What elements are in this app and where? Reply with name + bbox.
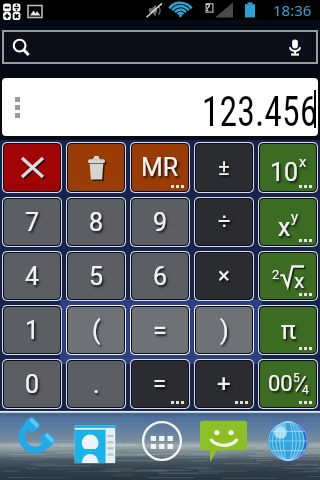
button[interactable]: 2: [260, 253, 316, 299]
staticText: (: [92, 316, 101, 345]
other: Voice search: [286, 38, 304, 56]
staticText: 2: [272, 267, 280, 282]
staticText: 4: [302, 383, 309, 397]
button[interactable]: ÷: [196, 199, 252, 245]
button[interactable]: =: [132, 307, 188, 353]
staticText: x: [278, 213, 291, 242]
button[interactable]: Browser: [265, 418, 311, 464]
button[interactable]: People: [73, 420, 117, 464]
button[interactable]: ×: [196, 253, 252, 299]
staticText: 7: [25, 208, 40, 237]
staticText: ): [220, 316, 229, 345]
button[interactable]: 10: [260, 144, 316, 191]
staticText: 4: [25, 262, 40, 291]
button[interactable]: π: [260, 307, 316, 353]
button[interactable]: Clear: [4, 144, 60, 191]
button[interactable]: 1: [4, 307, 60, 353]
staticText: 0: [25, 370, 40, 399]
button[interactable]: Search: [4, 32, 316, 62]
staticText: 1: [25, 316, 40, 345]
button[interactable]: Messaging: [200, 418, 247, 465]
staticText: 123.456: [202, 87, 318, 136]
button[interactable]: 0: [4, 361, 60, 407]
other: Search: [12, 38, 31, 57]
button[interactable]: 123.456: [2, 78, 318, 136]
staticText: 5: [293, 371, 300, 385]
staticText: 6: [153, 262, 168, 291]
staticText: +: [217, 370, 231, 398]
button[interactable]: 9: [132, 199, 188, 245]
staticText: π: [281, 316, 296, 345]
button[interactable]: Delete: [68, 144, 124, 191]
staticText: ?: [206, 1, 210, 13]
button[interactable]: x: [260, 199, 316, 245]
staticText: x: [299, 153, 307, 171]
other: Delete: [88, 156, 105, 180]
staticText: .: [93, 370, 100, 399]
button[interactable]: Phone: [10, 418, 54, 462]
staticText: 10: [270, 158, 299, 187]
staticText: x: [294, 269, 305, 294]
staticText: 00: [268, 371, 293, 397]
staticText: y: [291, 208, 299, 226]
button[interactable]: ±: [196, 144, 252, 191]
button[interactable]: 4: [4, 253, 60, 299]
button[interactable]: .: [68, 361, 124, 407]
staticText: MR: [141, 153, 179, 182]
button[interactable]: 00: [260, 361, 316, 407]
button[interactable]: =: [132, 361, 188, 407]
button[interactable]: 8: [68, 199, 124, 245]
button[interactable]: +: [196, 361, 252, 407]
button[interactable]: MR: [132, 144, 188, 191]
staticText: =: [153, 370, 167, 398]
staticText: ÷: [218, 209, 231, 235]
button[interactable]: 7: [4, 199, 60, 245]
staticText: 5: [89, 262, 104, 291]
staticText: ±: [218, 155, 230, 181]
button[interactable]: 6: [132, 253, 188, 299]
button[interactable]: Apps: [141, 420, 183, 462]
staticText: 18:36: [273, 0, 312, 20]
button[interactable]: 5: [68, 253, 124, 299]
staticText: 8: [89, 208, 104, 237]
staticText: =: [153, 316, 167, 345]
staticText: 9: [153, 208, 168, 237]
staticText: ×: [218, 263, 230, 289]
other: Clear: [22, 158, 43, 177]
button[interactable]: ): [196, 307, 252, 353]
button[interactable]: (: [68, 307, 124, 353]
